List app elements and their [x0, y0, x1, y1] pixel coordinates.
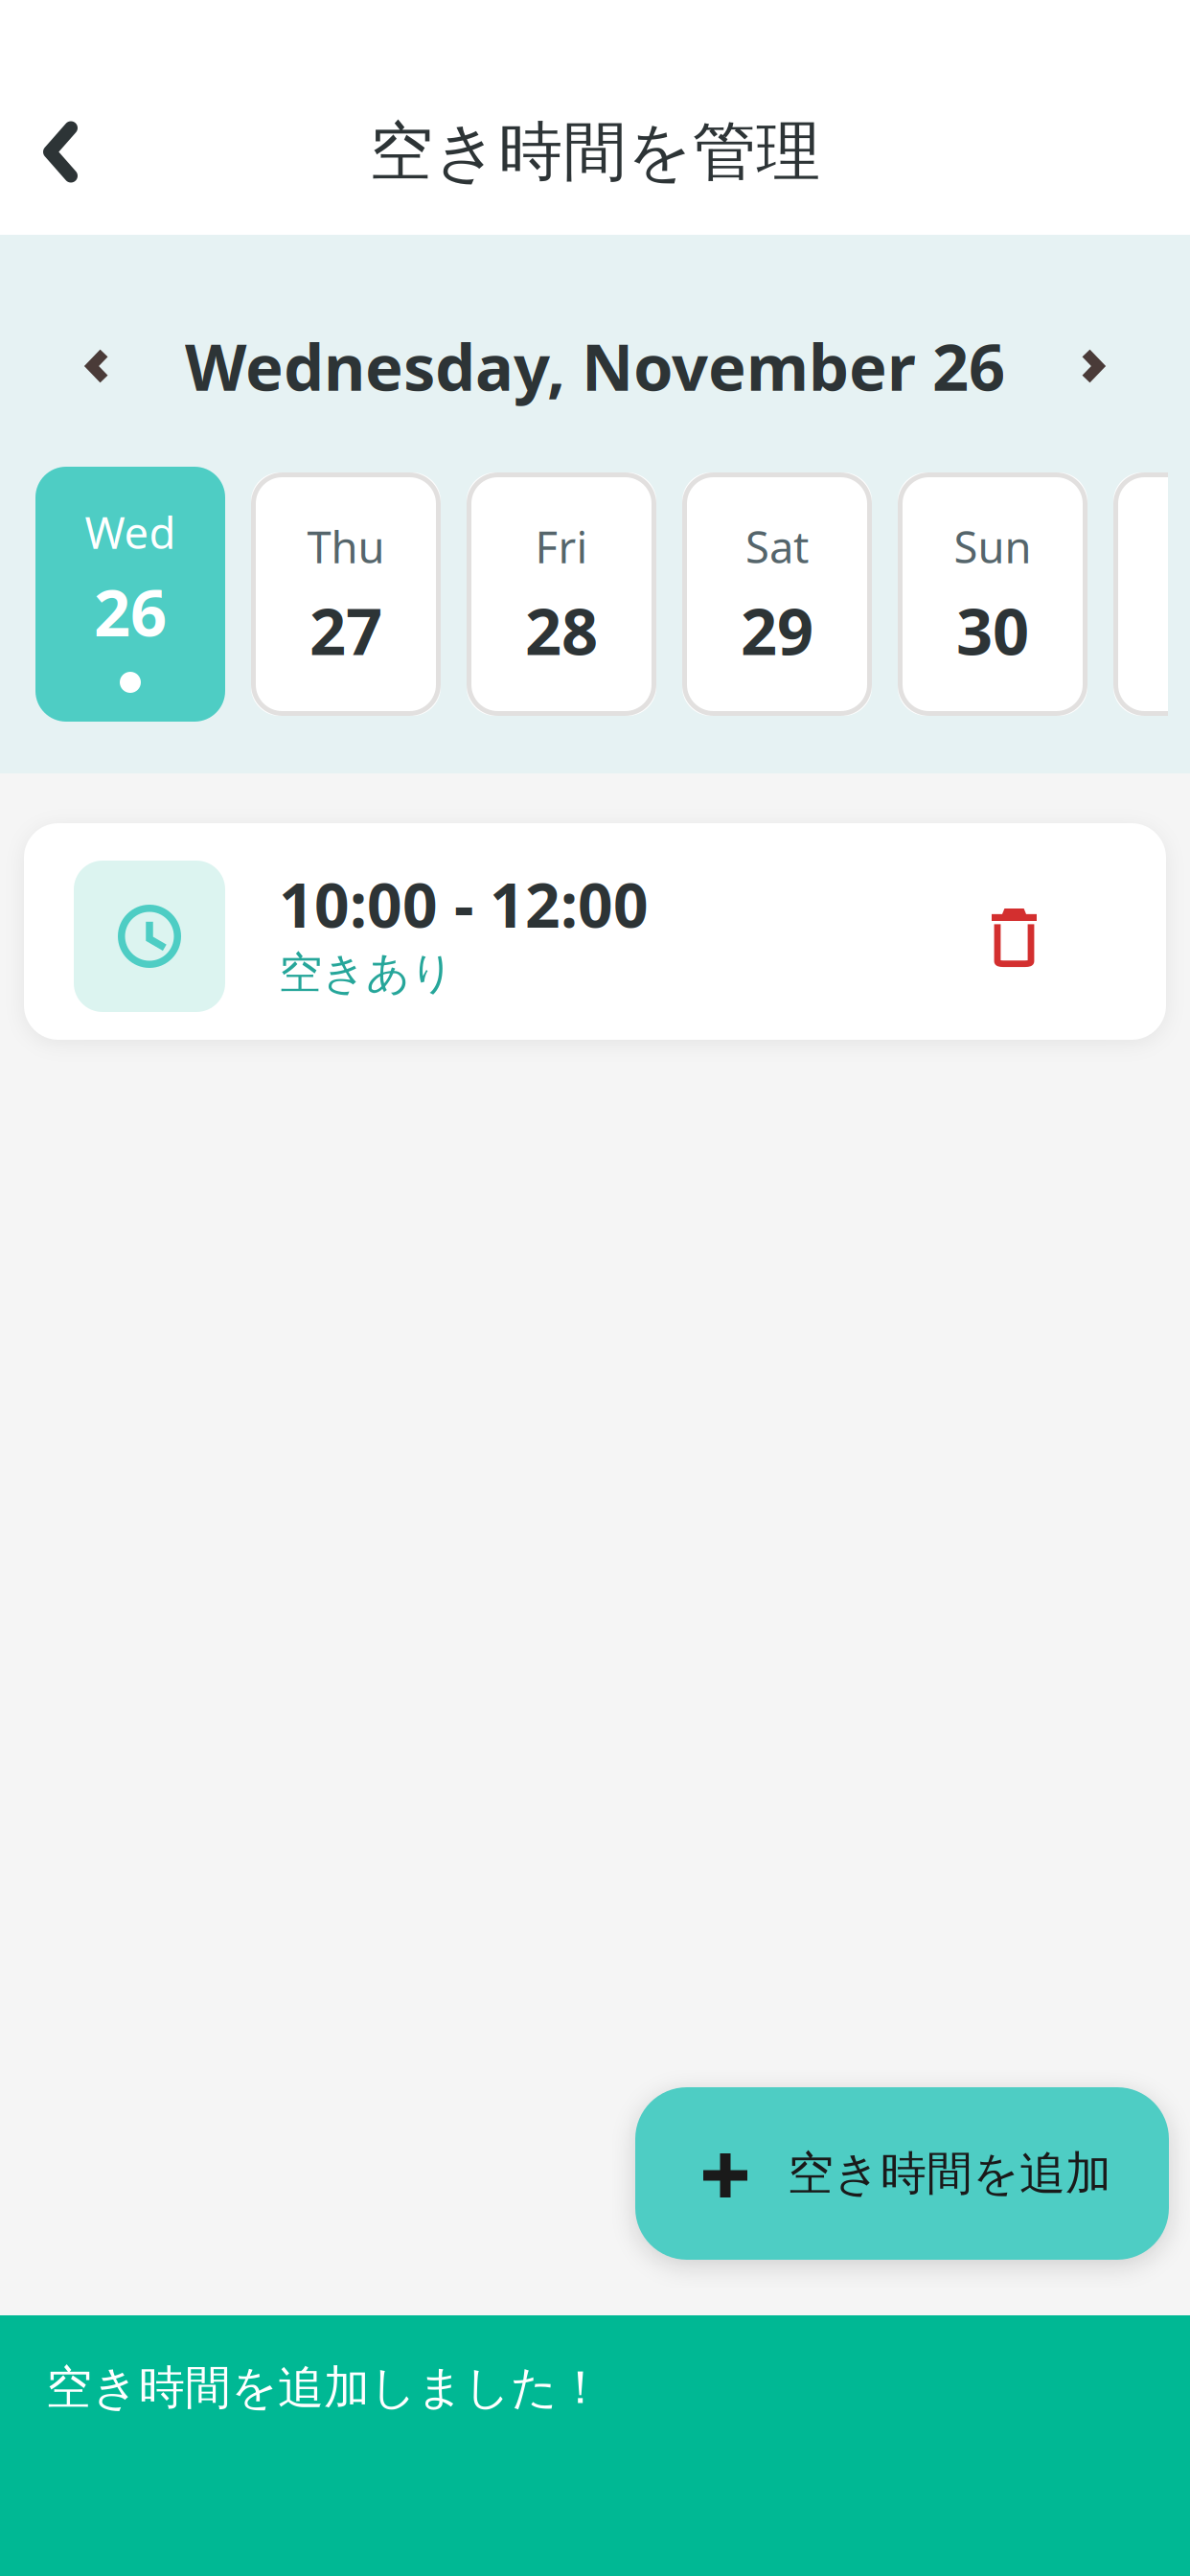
staticText: 空きあり: [279, 947, 454, 1000]
staticText: 26: [94, 569, 167, 654]
staticText: 空き時間を管理: [369, 113, 821, 191]
button[interactable]: 空き時間を追加: [635, 2087, 1169, 2260]
button[interactable]: Previous day: [54, 322, 142, 410]
staticText: Sun: [954, 517, 1031, 575]
staticText: Fri: [535, 517, 588, 575]
staticText: 27: [309, 588, 382, 673]
staticText: 空き時間を追加: [788, 2145, 1111, 2202]
button[interactable]: Back: [0, 95, 121, 208]
button[interactable]: Fri: [467, 472, 656, 716]
staticText: Wed: [85, 503, 176, 561]
button[interactable]: Thu: [251, 472, 441, 716]
staticText: 30: [956, 588, 1029, 673]
button[interactable]: 10:00 - 12:00: [24, 823, 1166, 1040]
button[interactable]: Wed: [35, 467, 225, 722]
button[interactable]: Sun: [898, 472, 1087, 716]
staticText: 29: [741, 588, 813, 673]
staticText: Sat: [745, 517, 809, 575]
staticText: 空き時間を追加しました！: [46, 2359, 604, 2416]
staticText: Thu: [307, 517, 385, 575]
staticText: 10:00 - 12:00: [279, 863, 649, 945]
staticText: Wednesday, November 26: [185, 324, 1005, 408]
staticText: 28: [525, 588, 598, 673]
button[interactable]: Sat: [682, 472, 872, 716]
button[interactable]: Next day: [1048, 322, 1136, 410]
